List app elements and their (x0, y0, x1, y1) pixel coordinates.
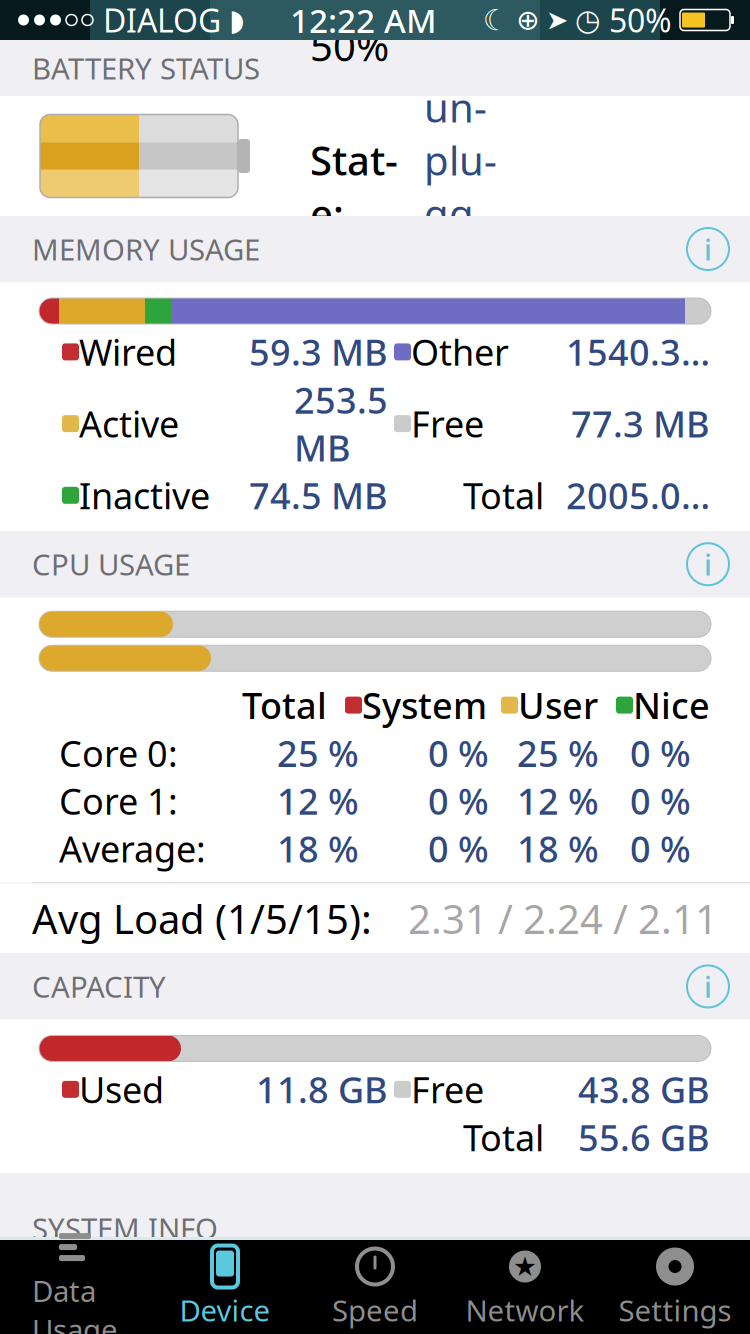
button[interactable]: MEMORY USAGE information (686, 227, 730, 271)
staticText: ◷ (575, 3, 601, 37)
staticText: 50% (609, 0, 672, 41)
staticText: Core 1: (59, 777, 178, 825)
staticText: Network (465, 1290, 584, 1329)
staticText: Active (79, 400, 179, 447)
staticText: Core 0: (59, 729, 178, 777)
staticText: Speed (332, 1290, 418, 1329)
staticText: i (704, 545, 712, 584)
staticText: System (362, 681, 487, 729)
staticText: User (518, 681, 598, 729)
staticText: SYSTEM INFO (32, 1209, 218, 1248)
staticText: DIALOG (103, 0, 221, 41)
staticText: 43.8 GB (578, 1065, 710, 1113)
button[interactable]: ★ (450, 1240, 600, 1334)
staticText: i (704, 229, 712, 268)
staticText: 0 % (630, 825, 691, 872)
staticText: MEMORY USAGE (32, 229, 260, 268)
staticText: Total (242, 681, 327, 729)
staticText: Inactive (79, 471, 210, 519)
button[interactable]: CAPACITY information (686, 964, 730, 1008)
staticText: Total (463, 1113, 544, 1161)
staticText: 74.5 MB (249, 471, 388, 519)
staticText: 25 % (517, 729, 599, 777)
staticText: CPU USAGE (32, 545, 190, 584)
staticText: 0 % (428, 825, 489, 872)
staticText: unplugged (424, 80, 497, 293)
staticText: 18 % (517, 825, 599, 872)
staticText: Avg Load (1/5/15): (32, 892, 372, 945)
staticText: Wired (79, 328, 177, 376)
staticText: 0 % (428, 729, 489, 777)
staticText: 25 % (277, 729, 359, 777)
staticText: ☾ (483, 3, 509, 37)
button[interactable]: Device (150, 1240, 300, 1334)
staticText: Used (79, 1065, 164, 1113)
staticText: 59.3 MB (249, 328, 388, 376)
staticText: Other (411, 328, 509, 376)
staticText: 11.8 GB (256, 1065, 388, 1113)
staticText: 2.31 / 2.24 / 2.11 (408, 892, 718, 945)
staticText: 12:22 AM (290, 0, 437, 42)
staticText: 1540.3… (566, 328, 710, 376)
staticText: Data Usage (32, 1271, 118, 1334)
staticText: ★ (513, 1251, 537, 1282)
button[interactable]: Settings (600, 1240, 750, 1334)
staticText: Nice (633, 681, 710, 729)
staticText: 12 % (277, 777, 359, 825)
staticText: ⊕ (516, 4, 539, 36)
staticText: 0 % (428, 777, 489, 825)
staticText: State: (310, 133, 398, 240)
staticText: 18 % (277, 825, 359, 872)
button[interactable]: Speed (300, 1240, 450, 1334)
staticText: Settings (618, 1290, 731, 1329)
button[interactable]: CPU USAGE information (686, 542, 730, 586)
staticText: 55.6 GB (578, 1113, 710, 1161)
staticText: i (704, 967, 712, 1006)
staticText: BATTERY STATUS (32, 48, 260, 87)
button[interactable]: Data Usage (0, 1240, 150, 1334)
staticText: Total (463, 471, 544, 519)
staticText: 2005.0… (566, 471, 710, 519)
staticText: 50% (310, 19, 389, 72)
staticText: ➤ (546, 5, 568, 35)
staticText: Free (411, 1065, 484, 1113)
staticText: ◗ (229, 3, 244, 37)
staticText: Average: (59, 825, 206, 872)
staticText: 0 % (630, 777, 691, 825)
staticText: 0 % (630, 729, 691, 777)
staticText: Device (179, 1290, 270, 1329)
staticText: Free (411, 400, 484, 447)
staticText: 12 % (517, 777, 599, 825)
staticText: CAPACITY (32, 967, 166, 1006)
staticText: 77.3 MB (571, 400, 710, 447)
staticText: 253.5 MB (294, 376, 388, 471)
